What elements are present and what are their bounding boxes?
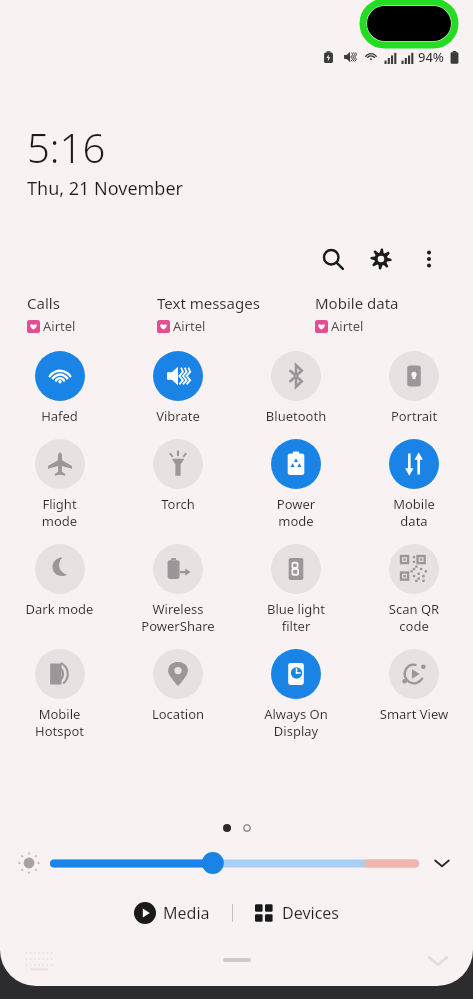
- button[interactable]: Torch: [119, 439, 237, 513]
- staticText: Torch: [119, 495, 237, 513]
- button[interactable]: [54, 850, 415, 876]
- button[interactable]: Smart View: [355, 649, 473, 723]
- button[interactable]: Portrait: [355, 351, 473, 425]
- button[interactable]: Text messages: [157, 293, 315, 335]
- button[interactable]: Power mode: [237, 439, 355, 530]
- button[interactable]: Hafed: [0, 351, 119, 425]
- button[interactable]: More options: [407, 237, 451, 281]
- button[interactable]: Location: [119, 649, 237, 723]
- button[interactable]: Mobile Hotspot: [0, 649, 119, 740]
- button[interactable]: Settings: [359, 237, 403, 281]
- staticText: Location: [119, 705, 237, 723]
- button[interactable]: Bluetooth: [237, 351, 355, 425]
- button[interactable]: Search: [311, 237, 355, 281]
- staticText: Mobile data: [315, 293, 399, 313]
- button[interactable]: Mobile data: [315, 293, 473, 335]
- button[interactable]: Devices: [249, 896, 346, 930]
- staticText: Smart View: [355, 705, 473, 723]
- staticText: 94%: [418, 48, 444, 66]
- button[interactable]: Scan QR code: [355, 544, 473, 635]
- staticText: Mobile data: [355, 495, 473, 530]
- button[interactable]: Always On Display: [237, 649, 355, 740]
- button[interactable]: Dark mode: [0, 544, 119, 618]
- staticText: Vibrate: [119, 407, 237, 425]
- staticText: Thu, 21 November: [27, 176, 184, 201]
- staticText: Airtel: [173, 317, 206, 335]
- staticText: Always On Display: [237, 705, 355, 740]
- button[interactable]: Blue light filter: [237, 544, 355, 635]
- button[interactable]: Vibrate: [119, 351, 237, 425]
- button[interactable]: Mobile data: [355, 439, 473, 530]
- staticText: Scan QR code: [355, 600, 473, 635]
- button[interactable]: Media: [128, 896, 216, 930]
- staticText: Bluetooth: [237, 407, 355, 425]
- staticText: Blue light filter: [237, 600, 355, 635]
- staticText: Airtel: [43, 317, 76, 335]
- staticText: Mobile Hotspot: [0, 705, 119, 740]
- staticText: Airtel: [331, 317, 364, 335]
- other: Collapse panel: [425, 947, 451, 973]
- button[interactable]: Flight mode: [0, 439, 119, 530]
- button[interactable]: Expand brightness options: [425, 846, 459, 880]
- staticText: Portrait: [355, 407, 473, 425]
- staticText: Text messages: [157, 293, 260, 313]
- staticText: Flight mode: [0, 495, 119, 530]
- button[interactable]: Wireless PowerShare: [119, 544, 237, 635]
- staticText: Calls: [27, 293, 60, 313]
- staticText: Power mode: [237, 495, 355, 530]
- staticText: Dark mode: [0, 600, 119, 618]
- button[interactable]: Calls: [27, 293, 157, 335]
- staticText: Devices: [282, 902, 340, 924]
- staticText: 5:16: [27, 120, 106, 174]
- staticText: Wireless PowerShare: [119, 600, 237, 635]
- staticText: Media: [163, 902, 210, 924]
- staticText: Hafed: [0, 407, 119, 425]
